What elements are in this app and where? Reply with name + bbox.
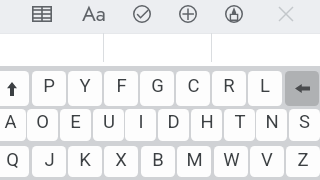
- button[interactable]: Y: [68, 71, 102, 106]
- button[interactable]: Shift: [0, 71, 29, 106]
- button[interactable]: T: [224, 109, 255, 141]
- button[interactable]: Z: [286, 146, 320, 177]
- button[interactable]: Insert: [176, 0, 200, 30]
- button[interactable]: Q: [0, 146, 29, 177]
- button[interactable]: W: [214, 146, 248, 177]
- button[interactable]: Draw: [222, 0, 246, 30]
- button[interactable]: Table: [30, 0, 54, 30]
- button[interactable]: Backspace: [285, 71, 319, 106]
- button[interactable]: X: [104, 146, 138, 177]
- staticText: H: [200, 111, 214, 133]
- staticText: A: [4, 111, 17, 133]
- button[interactable]: A: [0, 109, 26, 141]
- button[interactable]: G: [140, 71, 174, 106]
- button[interactable]: L: [248, 71, 282, 106]
- button[interactable]: U: [93, 109, 124, 141]
- staticText: V: [261, 149, 273, 171]
- button[interactable]: D: [158, 109, 189, 141]
- staticText: N: [265, 111, 279, 133]
- staticText: R: [223, 75, 235, 97]
- button[interactable]: M: [177, 146, 211, 177]
- staticText: C: [187, 75, 200, 97]
- button[interactable]: R: [212, 71, 246, 106]
- button[interactable]: H: [191, 109, 222, 141]
- staticText: B: [152, 149, 164, 171]
- button[interactable]: I: [125, 109, 156, 141]
- staticText: G: [151, 75, 164, 97]
- staticText: U: [103, 111, 115, 133]
- button[interactable]: N: [256, 109, 287, 141]
- staticText: I: [138, 111, 144, 133]
- button[interactable]: K: [68, 146, 102, 177]
- button[interactable]: F: [104, 71, 138, 106]
- button[interactable]: Close: [274, 0, 298, 30]
- staticText: X: [115, 149, 127, 171]
- staticText: Aa: [82, 0, 106, 29]
- staticText: Z: [297, 149, 309, 171]
- button[interactable]: C: [176, 71, 210, 106]
- button[interactable]: Text style: [81, 0, 107, 30]
- staticText: E: [70, 111, 81, 133]
- staticText: J: [44, 149, 55, 171]
- button[interactable]: Checklist: [130, 0, 154, 30]
- staticText: K: [79, 149, 91, 171]
- staticText: Q: [6, 149, 19, 171]
- staticText: F: [116, 75, 127, 97]
- button[interactable]: E: [60, 109, 91, 141]
- button[interactable]: P: [32, 71, 66, 106]
- staticText: Y: [79, 75, 91, 97]
- staticText: L: [260, 75, 270, 97]
- staticText: T: [234, 111, 246, 133]
- staticText: D: [167, 111, 180, 133]
- button[interactable]: O: [27, 109, 58, 141]
- staticText: P: [43, 75, 55, 97]
- button[interactable]: V: [250, 146, 284, 177]
- button[interactable]: S: [289, 109, 320, 141]
- staticText: W: [223, 149, 240, 171]
- staticText: S: [299, 111, 310, 133]
- button[interactable]: B: [141, 146, 175, 177]
- staticText: O: [36, 111, 49, 133]
- button[interactable]: J: [32, 146, 66, 177]
- staticText: M: [186, 149, 203, 171]
